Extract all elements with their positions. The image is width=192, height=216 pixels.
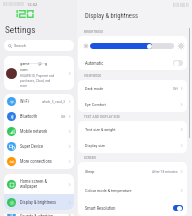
staticText: After 18 minutes xyxy=(152,169,178,174)
staticText: SCREEN xyxy=(84,156,96,160)
staticText: ░░ ░░ ░░░░ xyxy=(3,2,25,6)
button[interactable]: Eye Comfort xyxy=(78,96,187,112)
button[interactable]: Text size & weight xyxy=(78,121,187,137)
staticText: 12:02 xyxy=(27,2,38,7)
staticText: ░ ░ ░░ ░ xyxy=(173,2,189,7)
button[interactable]: Colour mode & temperature xyxy=(78,181,187,200)
staticText: Mobile network xyxy=(20,129,67,134)
staticText: Colour mode & temperature xyxy=(85,188,179,193)
staticText: Off xyxy=(61,115,66,119)
staticText: Automatic xyxy=(85,61,173,66)
button[interactable]: Mobile network xyxy=(4,124,74,139)
button[interactable]: Sleep xyxy=(78,162,187,181)
staticText: Eye Comfort xyxy=(85,102,179,107)
other: High brightness xyxy=(178,43,184,49)
staticText: Display & brightness xyxy=(85,12,138,20)
staticText: More connections xyxy=(20,159,67,164)
staticText: Wi-Fi xyxy=(20,99,42,104)
staticText: Dark mode xyxy=(85,86,173,91)
button[interactable]: Search xyxy=(4,40,74,51)
button[interactable]: Bluetooth xyxy=(4,109,74,124)
staticText: Bluetooth xyxy=(20,114,61,119)
staticText: Settings xyxy=(5,24,36,35)
staticText: Search xyxy=(14,43,26,48)
staticText: Off xyxy=(173,86,178,91)
staticText: whale_5_casd_2 xyxy=(42,100,66,104)
staticText: Text size & weight xyxy=(85,127,179,132)
button[interactable]: Automatic xyxy=(78,56,187,70)
button[interactable]: Home screen & wallpaper xyxy=(4,174,74,194)
other: Frame rate 120 xyxy=(11,10,34,18)
staticText: Smart Resolution xyxy=(85,206,173,211)
button[interactable]: Smart Resolution xyxy=(78,200,187,216)
staticText: Display size xyxy=(85,143,179,148)
staticText: Sleep xyxy=(85,169,152,174)
staticText: BRIGHTNESS xyxy=(84,30,104,34)
button[interactable]: Super Device xyxy=(4,139,74,154)
staticText: VIEW MODE xyxy=(84,74,102,78)
staticText: game········@···g com xyxy=(20,61,47,72)
staticText: HUAWEI ID, Payment and purchases, Cloud,… xyxy=(20,74,55,88)
button[interactable]: Display size xyxy=(78,137,187,153)
staticText: Super Device xyxy=(20,144,67,149)
button[interactable]: Dark mode xyxy=(78,80,187,96)
button[interactable]: More connections xyxy=(4,154,74,169)
button[interactable]: game········@···g com xyxy=(4,56,74,90)
other: Low brightness xyxy=(84,44,88,48)
staticText: TEXT AND DISPLAY SIZE xyxy=(84,115,121,119)
button[interactable]: Wi-Fi xyxy=(4,94,74,109)
button[interactable]: Display & brightness xyxy=(4,194,74,210)
staticText: Sounds & vibration xyxy=(20,214,67,216)
staticText: Home screen & wallpaper xyxy=(20,179,67,189)
button[interactable]: Sounds & vibration xyxy=(4,214,74,216)
staticText: Display & brightness xyxy=(20,200,67,205)
